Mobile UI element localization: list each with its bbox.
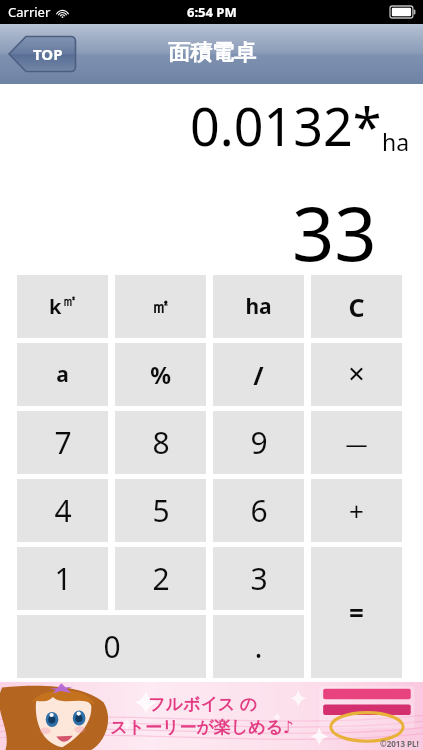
staticText: +: [349, 493, 364, 528]
staticText: %: [150, 359, 171, 390]
button[interactable]: —: [311, 411, 402, 474]
staticText: 4: [54, 490, 72, 531]
button[interactable]: k: [17, 275, 108, 338]
staticText: 9: [250, 422, 268, 463]
staticText: ha: [245, 292, 272, 321]
button[interactable]: 2: [115, 547, 206, 610]
button[interactable]: 7: [17, 411, 108, 474]
button[interactable]: 5: [115, 479, 206, 542]
button[interactable]: ✕: [311, 343, 402, 406]
staticText: .: [254, 626, 263, 667]
button[interactable]: Advertisement banner: [0, 682, 423, 750]
staticText: 6: [250, 490, 268, 531]
staticText: k: [49, 293, 62, 320]
button[interactable]: %: [115, 343, 206, 406]
staticText: /: [253, 358, 264, 392]
button[interactable]: 1: [17, 547, 108, 610]
staticText: ha: [382, 126, 410, 157]
button[interactable]: ha: [213, 275, 304, 338]
button[interactable]: C: [311, 275, 402, 338]
button[interactable]: /: [213, 343, 304, 406]
button[interactable]: .: [213, 615, 304, 678]
staticText: ㎡: [151, 295, 170, 319]
staticText: 5: [152, 490, 170, 531]
button[interactable]: Equals: [311, 547, 402, 678]
staticText: 6:54 PM: [187, 3, 237, 21]
staticText: Carrier: [8, 3, 51, 21]
button[interactable]: 9: [213, 411, 304, 474]
staticText: 3: [250, 558, 268, 599]
button[interactable]: ㎡: [115, 275, 206, 338]
staticText: 33: [292, 182, 377, 275]
button[interactable]: 8: [115, 411, 206, 474]
staticText: ©2013 PL!: [380, 738, 419, 749]
button[interactable]: +: [311, 479, 402, 542]
staticText: TOP: [33, 44, 63, 64]
staticText: C: [348, 290, 365, 324]
button[interactable]: 0: [17, 615, 206, 678]
staticText: a: [56, 360, 69, 389]
staticText: 0.0132*: [190, 90, 382, 161]
staticText: =: [349, 595, 364, 630]
staticText: ✕: [347, 362, 366, 388]
staticText: 面積電卓: [168, 39, 256, 67]
staticText: フルボイス の: [148, 692, 257, 715]
staticText: ㎡: [62, 292, 77, 311]
button[interactable]: TOP, back: [7, 35, 77, 73]
staticText: 0: [103, 626, 121, 667]
staticText: —: [345, 428, 368, 458]
button[interactable]: 4: [17, 479, 108, 542]
button[interactable]: a: [17, 343, 108, 406]
staticText: ストーリーが楽しめる♪: [110, 717, 294, 738]
staticText: 8: [152, 422, 170, 463]
staticText: 2: [152, 558, 170, 599]
staticText: 1: [54, 558, 72, 599]
button[interactable]: 3: [213, 547, 304, 610]
button[interactable]: 6: [213, 479, 304, 542]
staticText: 7: [54, 422, 72, 463]
